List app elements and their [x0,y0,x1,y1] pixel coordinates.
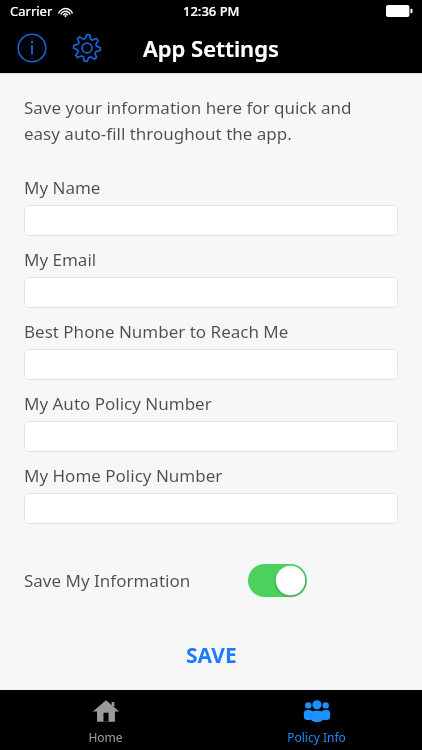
staticText: My Name [24,176,101,199]
staticText: Best Phone Number to Reach Me [24,320,289,343]
button[interactable]: Home [0,690,211,750]
staticText: My Email [24,248,97,271]
button[interactable]: Policy Info [211,690,422,750]
staticText: Save My Information [24,569,191,592]
staticText: Save your information here for quick and… [24,96,384,145]
button[interactable]: Settings [68,29,106,67]
staticText: 12:36 PM [183,2,240,20]
staticText: Home [88,729,123,745]
button[interactable] [24,421,398,452]
staticText: Policy Info [287,729,346,745]
button[interactable] [24,493,398,524]
button[interactable]: Info [14,30,50,66]
staticText: My Auto Policy Number [24,392,212,415]
button[interactable] [24,205,398,236]
button[interactable]: SAVE [166,635,257,676]
button[interactable] [24,277,398,308]
button[interactable]: Save My Information [0,558,422,602]
staticText: My Home Policy Number [24,464,223,487]
staticText: App Settings [143,33,279,63]
button[interactable] [24,349,398,380]
staticText: SAVE [186,641,237,670]
button[interactable]: Save My Information toggle [248,564,307,597]
staticText: Carrier [10,2,53,20]
